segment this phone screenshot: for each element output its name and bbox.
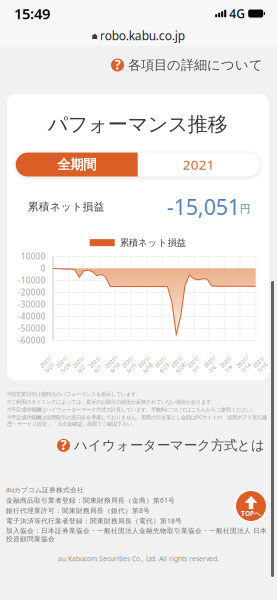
staticText: robo.kabu.co.jp (100, 27, 185, 43)
staticText: 4G (229, 5, 245, 21)
staticText: 2021/6/23 (156, 357, 170, 371)
staticText: 金融商品取引業者登録：関東財務局長（金商）第61号 (6, 496, 175, 505)
staticText: -20000 (18, 287, 46, 298)
staticText: 2021/5/25 (41, 357, 55, 371)
button[interactable]: ページ先頭へ戻る (234, 489, 268, 523)
staticText: ? (114, 56, 120, 73)
staticText: 2021/6/7 (90, 357, 104, 371)
staticText: ※予定成功報酬はハイウォーターマーク方式で計算しています。手数料についてはこちら… (7, 406, 256, 413)
staticText: -40000 (18, 311, 46, 322)
staticText: au Kabucom Securities Co., Ltd. All righ… (58, 554, 219, 563)
staticText: ? (60, 436, 66, 454)
staticText: 加入協会：日本証券業協会・一般社団法人金融先物取引業協会・一般社団法人 日本投資… (6, 527, 267, 543)
button[interactable]: ? (0, 52, 277, 78)
staticText: 2021/5/28 (57, 357, 71, 371)
staticText: 2021/7/6 (205, 357, 219, 371)
staticText: -30000 (18, 299, 46, 310)
staticText: -10000 (18, 275, 46, 286)
staticText: 2021/7/1 (188, 357, 202, 371)
staticText: 全期間 (57, 156, 96, 173)
staticText: 累積ネット損益 (28, 200, 105, 213)
staticText: パフォーマンス推移 (48, 112, 228, 137)
staticText: 2021/6/15 (123, 357, 137, 371)
staticText: ハイウォーターマーク方式とは (74, 437, 265, 454)
button[interactable]: 全期間 (16, 153, 138, 177)
staticText: 15:49 (14, 4, 50, 23)
staticText: 円 (240, 202, 251, 215)
staticText: 電子決済等代行業者登録：関東財務局長（電代）第18号 (6, 516, 182, 525)
staticText: 2021/6/10 (106, 357, 120, 371)
staticText: 0 (41, 263, 46, 274)
staticText: auカブコム証券株式会社 (6, 485, 84, 494)
staticText: -60000 (18, 335, 46, 346)
button[interactable]: robo.kabu.co.jp (0, 27, 277, 44)
button[interactable]: 2021 (138, 153, 260, 177)
staticText: ※前営業日引け後時点のパフォーマンスを表示しています。 (7, 390, 141, 397)
button[interactable]: ? (0, 433, 277, 457)
staticText: 累積ネット損益 (120, 237, 186, 248)
staticText: 2021/7/9 (221, 357, 235, 371)
staticText: 2021/6/28 (172, 357, 186, 371)
staticText: 2021/6/2 (74, 357, 88, 371)
staticText: -50000 (18, 323, 46, 334)
staticText: 2021/7/19 (254, 357, 268, 371)
staticText: TOPへ (241, 509, 261, 518)
staticText: 2021 (183, 156, 215, 173)
staticText: 各項目の詳細について (128, 57, 263, 73)
staticText: ※ご利用のタイミングによっては、直近のお取引の状況が反映されていない場合がありま… (7, 398, 216, 405)
staticText: 2021/7/14 (238, 357, 252, 371)
staticText: 銀行代理業許可：関東財務局長（銀代）第8号 (6, 506, 150, 515)
staticText: 10000 (21, 251, 46, 262)
staticText: ※予定成功報酬は信用取引の逆日歩を考慮しておりません。実際の引き落とし金額はPC… (7, 414, 267, 427)
staticText: -15,051 (167, 193, 240, 221)
staticText: 2021/6/18 (139, 357, 153, 371)
